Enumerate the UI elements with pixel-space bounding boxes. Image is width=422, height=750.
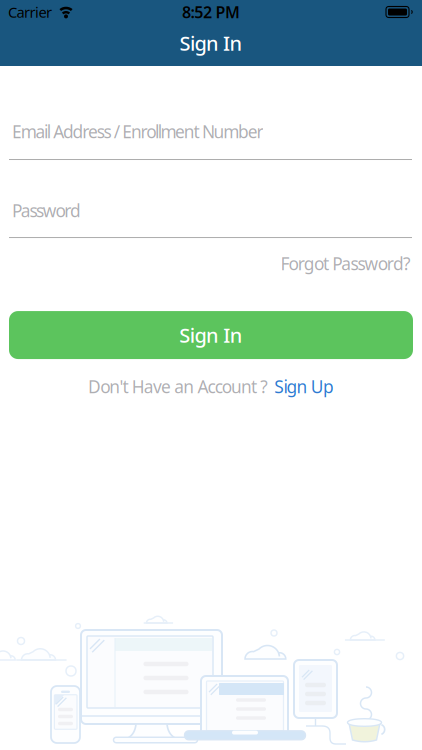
staticText: Sign In: [179, 322, 243, 348]
button[interactable]: Forgot Password?: [280, 252, 411, 275]
staticText: Email Address / Enrollment Number: [12, 120, 263, 143]
button[interactable]: Sign Up: [274, 375, 334, 398]
staticText: Carrier: [8, 2, 52, 22]
staticText: Sign Up: [274, 375, 334, 398]
staticText: Password: [12, 199, 81, 222]
staticText: Sign In: [179, 30, 242, 56]
staticText: Don't Have an Account ?: [88, 375, 268, 398]
staticText: Forgot Password?: [280, 252, 411, 275]
staticText: 8:52 PM: [182, 1, 240, 23]
button[interactable]: Sign In: [9, 311, 413, 359]
